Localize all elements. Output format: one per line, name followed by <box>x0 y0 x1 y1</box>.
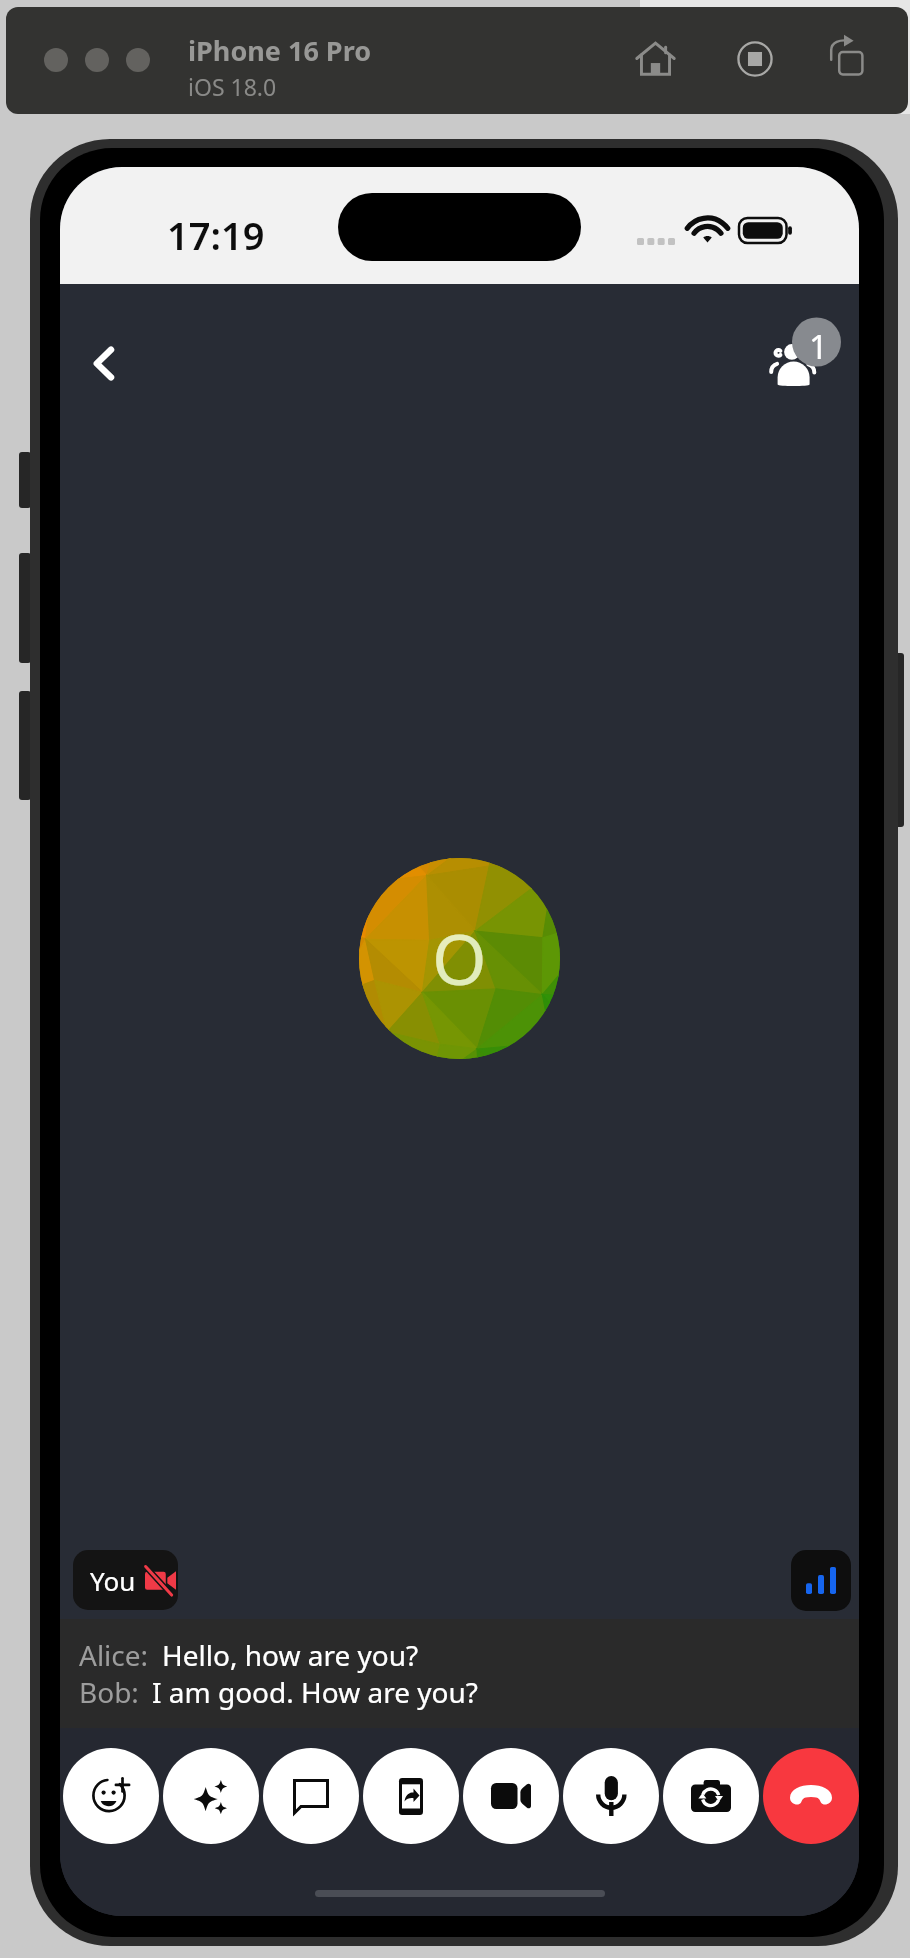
button[interactable]: Effects <box>163 1748 259 1844</box>
button[interactable]: You <box>73 1550 178 1610</box>
staticText: Bob: <box>79 1673 139 1711</box>
button[interactable]: End call <box>763 1748 859 1844</box>
button[interactable]: Flip camera <box>663 1748 759 1844</box>
button[interactable]: Microphone <box>563 1748 659 1844</box>
button[interactable]: Back <box>61 321 145 405</box>
button[interactable]: Share screen <box>363 1748 459 1844</box>
button[interactable]: Participants <box>757 306 857 396</box>
button[interactable]: Chat <box>263 1748 359 1844</box>
staticText: iOS 18.0 <box>188 71 277 102</box>
staticText: Hello, how are you? <box>162 1636 419 1674</box>
staticText: You <box>90 1563 136 1598</box>
staticText: 17:19 <box>167 209 265 261</box>
staticText: Alice: <box>79 1636 149 1674</box>
staticText: 1 <box>809 324 828 369</box>
staticText: iPhone 16 Pro <box>188 32 372 69</box>
button[interactable]: Add reaction <box>63 1748 159 1844</box>
button[interactable]: Network quality <box>791 1550 851 1611</box>
staticText: O <box>432 910 487 1005</box>
button[interactable]: Camera <box>463 1748 559 1844</box>
staticText: I am good. How are you? <box>152 1673 478 1711</box>
